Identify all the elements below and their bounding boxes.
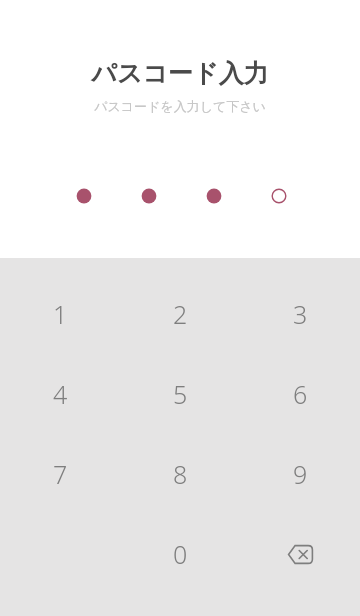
button[interactable]: 0 <box>148 522 212 586</box>
button[interactable]: 4 <box>28 362 92 426</box>
staticText: 9 <box>293 457 308 491</box>
button[interactable]: 2 <box>148 282 212 346</box>
button[interactable]: 5 <box>148 362 212 426</box>
staticText: 5 <box>173 377 188 411</box>
button[interactable]: 6 <box>268 362 332 426</box>
staticText: パスコードを入力して下さい <box>94 98 266 114</box>
staticText: 1 <box>53 297 68 331</box>
button[interactable]: Backspace <box>268 522 332 586</box>
staticText: 4 <box>53 377 68 411</box>
button[interactable]: 1 <box>28 282 92 346</box>
staticText: 6 <box>293 377 308 411</box>
staticText: 0 <box>173 537 188 571</box>
staticText: 7 <box>53 457 68 491</box>
staticText: 3 <box>293 297 308 331</box>
button[interactable]: 9 <box>268 442 332 506</box>
staticText: パスコード入力 <box>91 58 269 89</box>
staticText: 8 <box>173 457 188 491</box>
staticText: 2 <box>173 297 188 331</box>
button[interactable]: 3 <box>268 282 332 346</box>
button[interactable]: 7 <box>28 442 92 506</box>
button[interactable]: 8 <box>148 442 212 506</box>
